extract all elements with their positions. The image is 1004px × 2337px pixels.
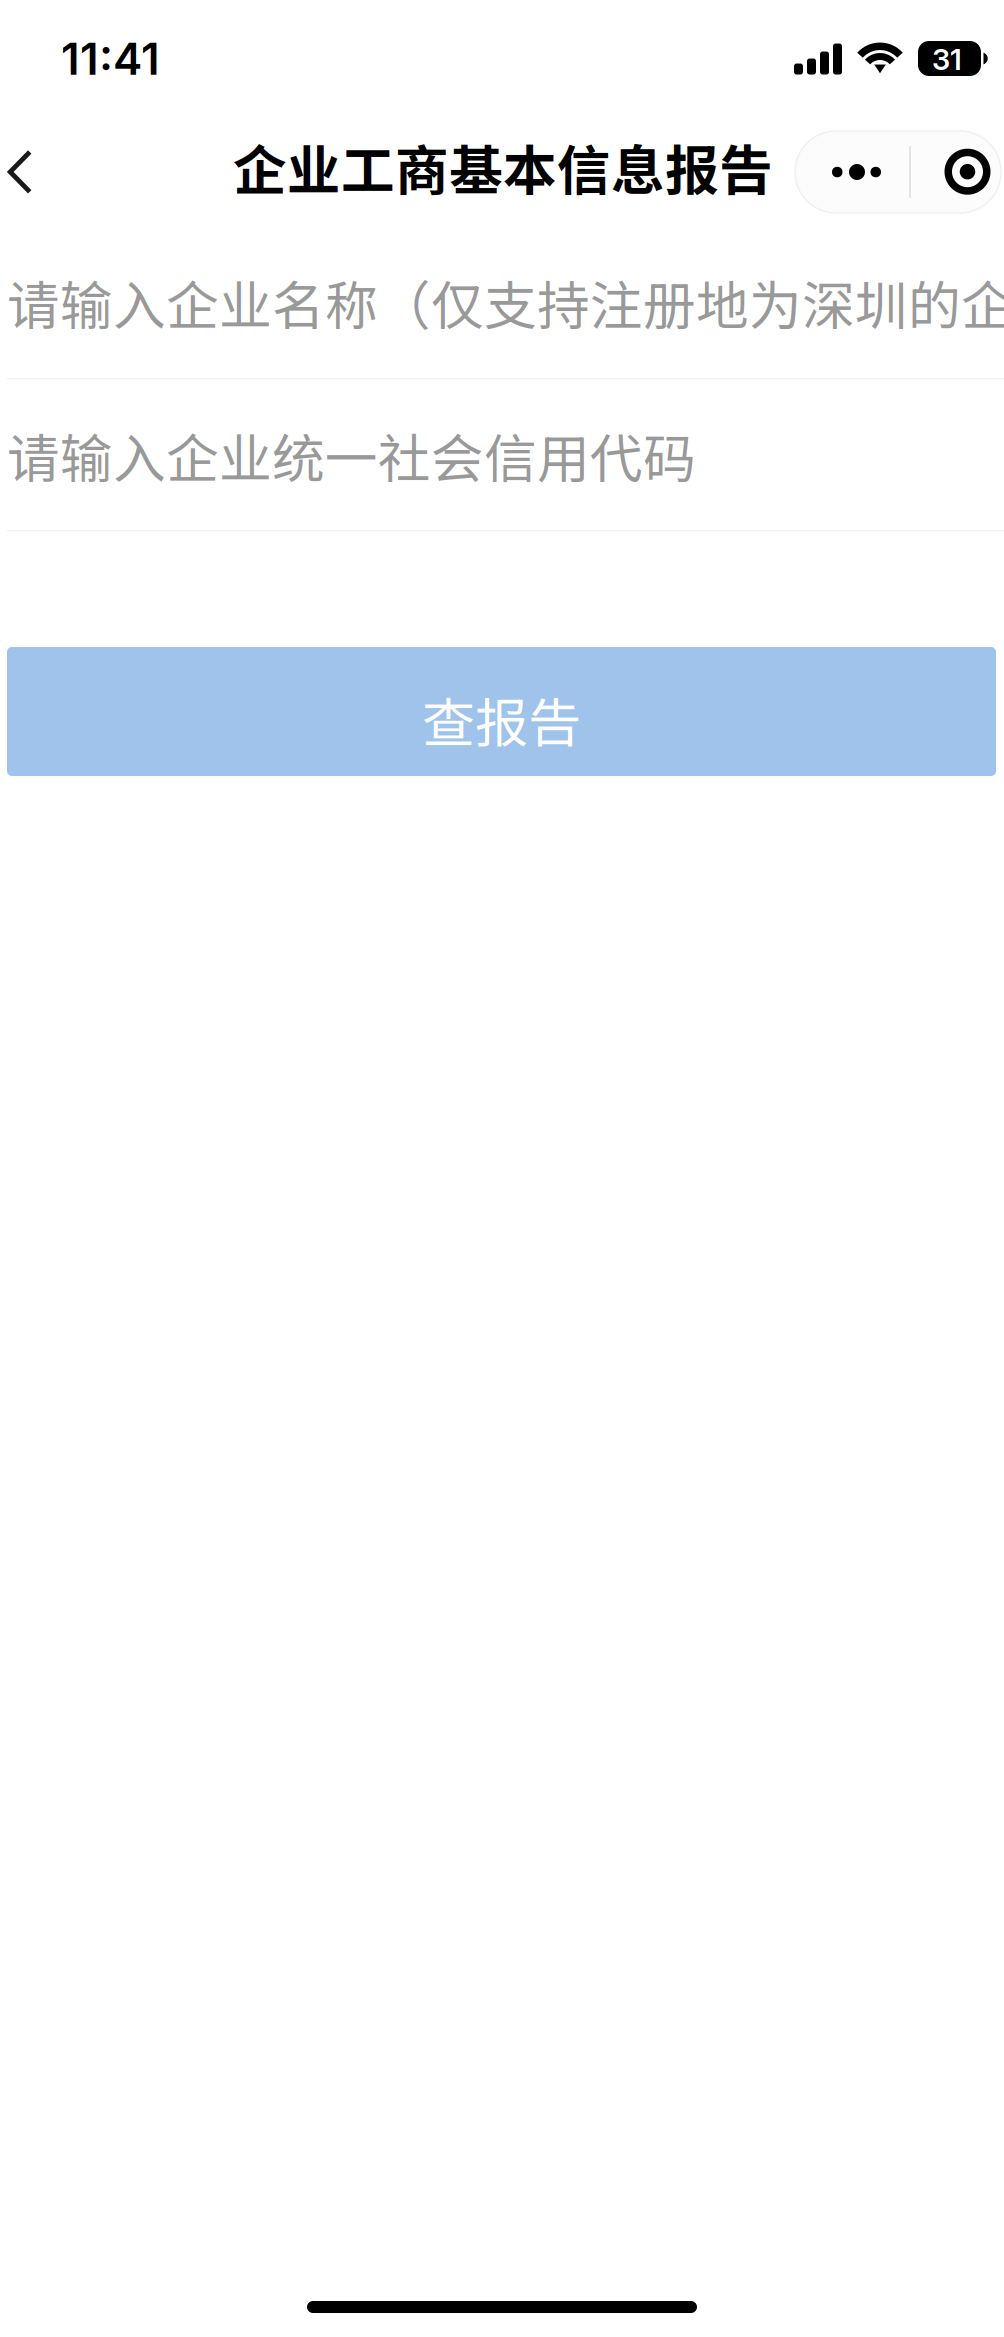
staticText: 请输入企业统一社会信用代码: [7, 417, 696, 493]
button[interactable]: 请输入企业名称（仅支持注册地为深圳的企业）: [0, 217, 1004, 378]
button[interactable]: Back: [0, 124, 78, 220]
button[interactable]: Close mini program: [911, 131, 1001, 213]
staticText: 11:41: [61, 32, 160, 85]
staticText: 企业工商基本信息报告: [233, 128, 773, 205]
button[interactable]: More: [795, 131, 909, 213]
button[interactable]: 查报告: [7, 647, 996, 776]
staticText: 31: [932, 42, 962, 77]
staticText: 请输入企业名称（仅支持注册地为深圳的企业）: [7, 264, 1004, 340]
staticText: 查报告: [422, 681, 581, 758]
button[interactable]: 请输入企业统一社会信用代码: [0, 380, 1004, 530]
